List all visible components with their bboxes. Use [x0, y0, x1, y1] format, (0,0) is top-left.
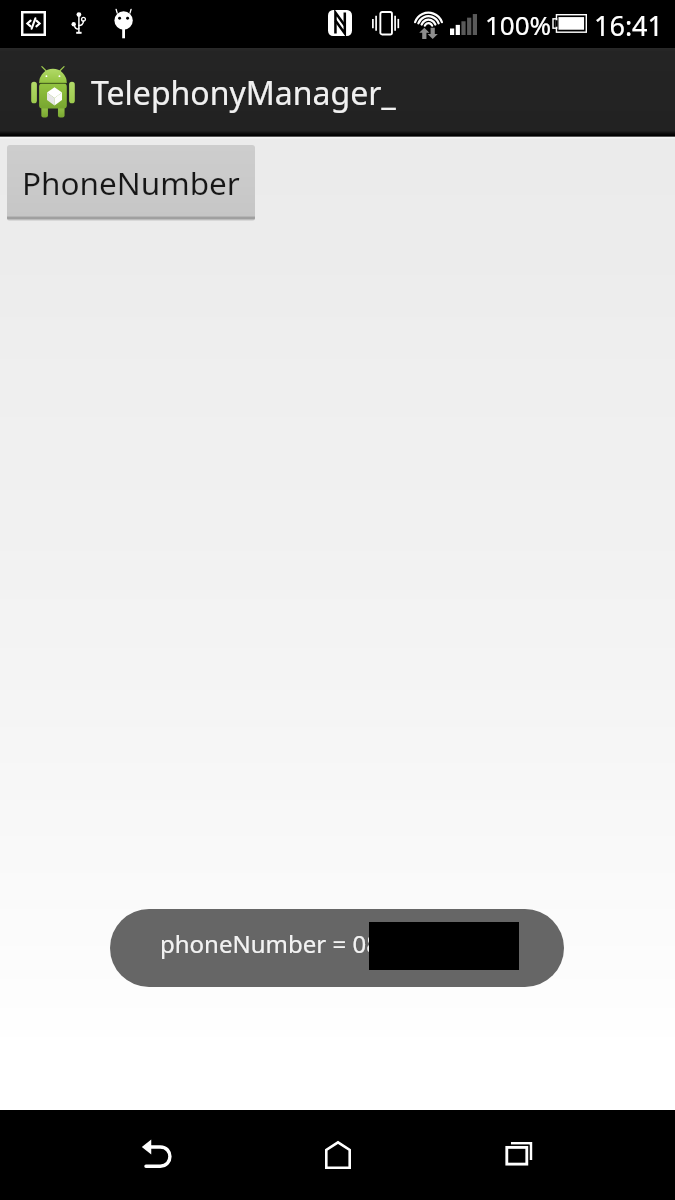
button[interactable]: Recents [473, 1110, 563, 1200]
button[interactable]: Back [112, 1110, 202, 1200]
button[interactable]: PhoneNumber [7, 145, 255, 221]
staticText: TelephonyManager_ [91, 71, 396, 115]
staticText: 100% [485, 7, 552, 42]
staticText: 16:41 [594, 7, 664, 44]
staticText: phoneNumber = 08 [160, 927, 380, 960]
button[interactable]: Home [293, 1110, 383, 1200]
staticText: PhoneNumber [22, 161, 240, 204]
